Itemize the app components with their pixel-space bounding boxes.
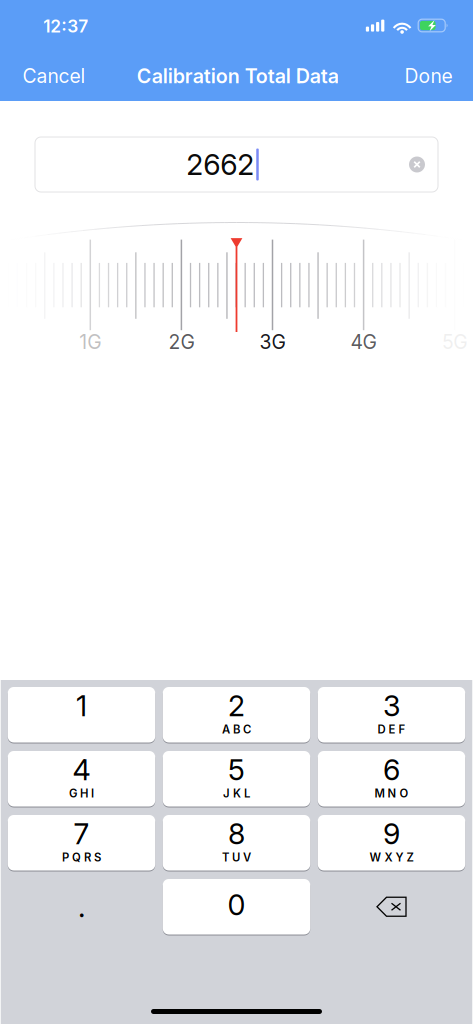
staticText: 0: [227, 887, 245, 922]
button[interactable]: Delete: [318, 878, 465, 935]
staticText: 8: [228, 816, 245, 851]
staticText: 5: [228, 752, 245, 787]
button[interactable]: 6: [318, 750, 465, 807]
button[interactable]: 3: [318, 686, 465, 743]
staticText: G H I: [69, 786, 94, 800]
staticText: W X Y Z: [369, 850, 413, 864]
staticText: Calibration Total Data: [137, 64, 339, 88]
staticText: Done: [404, 64, 452, 88]
button[interactable]: Cancel: [22, 54, 114, 98]
staticText: 4: [72, 752, 90, 787]
button[interactable]: 9: [318, 814, 465, 871]
staticText: 9: [383, 816, 400, 851]
staticText: 2G: [168, 330, 194, 354]
button[interactable]: 5: [163, 750, 310, 807]
button[interactable]: Clear text: [402, 149, 432, 179]
staticText: D E F: [377, 722, 405, 736]
staticText: 3: [383, 688, 400, 723]
button[interactable]: 7: [8, 814, 155, 871]
button[interactable]: Done: [372, 54, 452, 98]
staticText: A B C: [222, 722, 251, 736]
staticText: T U V: [222, 850, 251, 864]
staticText: 12:37: [43, 16, 88, 37]
staticText: P Q R S: [62, 850, 101, 864]
staticText: 3G: [259, 330, 285, 354]
button[interactable]: 2: [163, 686, 310, 743]
staticText: Cancel: [22, 64, 85, 88]
button[interactable]: 0: [163, 878, 310, 935]
staticText: 7: [73, 816, 89, 851]
staticText: M N O: [374, 786, 408, 800]
staticText: 2662: [186, 147, 254, 182]
staticText: 4G: [351, 330, 377, 354]
button[interactable]: 8: [163, 814, 310, 871]
staticText: 5G: [442, 330, 467, 354]
staticText: .: [78, 889, 85, 924]
staticText: 6: [383, 752, 400, 787]
button[interactable]: 4: [8, 750, 155, 807]
staticText: 1: [76, 688, 87, 723]
staticText: J K L: [223, 786, 250, 800]
button[interactable]: 1: [8, 686, 155, 743]
staticText: 1G: [79, 330, 101, 354]
staticText: 2: [228, 688, 245, 723]
button[interactable]: Decimal point: [8, 878, 155, 935]
